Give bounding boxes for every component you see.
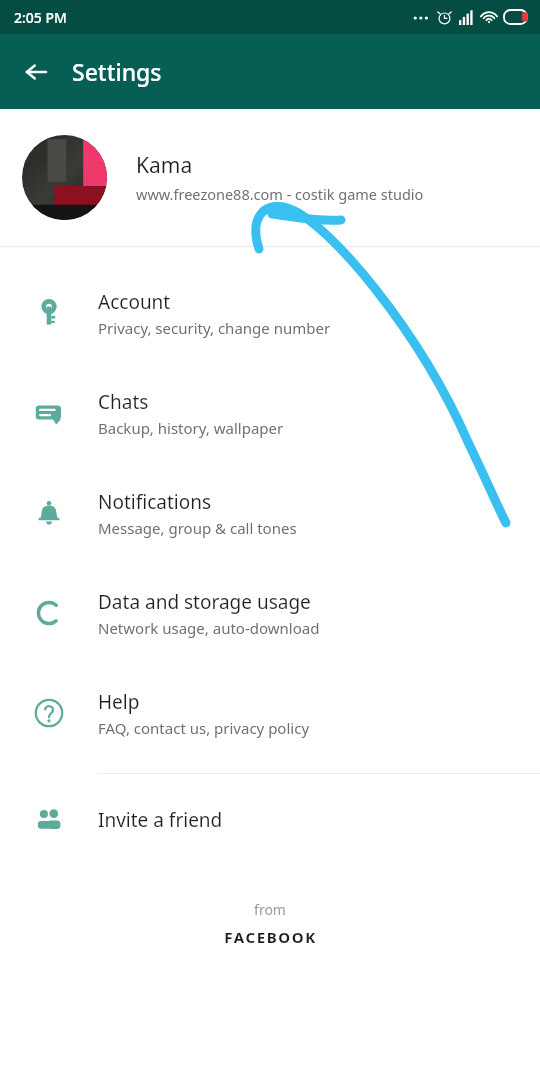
button[interactable]: Account <box>0 263 540 363</box>
staticText: from <box>254 900 286 919</box>
staticText: Invite a friend <box>98 807 223 833</box>
staticText: Network usage, auto-download <box>98 618 320 638</box>
staticText: Message, group & call tones <box>98 518 297 538</box>
staticText: www.freezone88.com - costik game studio <box>136 184 424 204</box>
button[interactable]: Kama <box>0 109 540 246</box>
button[interactable]: Invite a friend <box>0 774 540 866</box>
staticText: Account <box>98 289 171 315</box>
staticText: Chats <box>98 389 149 415</box>
staticText: Kama <box>136 151 193 180</box>
staticText: Data and storage usage <box>98 589 311 615</box>
staticText: 2:05 PM <box>14 8 67 27</box>
staticText: Notifications <box>98 489 212 515</box>
staticText: FACEBOOK <box>224 927 317 947</box>
staticText: Help <box>98 689 140 715</box>
button[interactable]: Chats <box>0 363 540 463</box>
staticText: Backup, history, wallpaper <box>98 418 284 438</box>
button[interactable]: Notifications <box>0 463 540 563</box>
button[interactable]: Back <box>12 48 60 96</box>
staticText: FAQ, contact us, privacy policy <box>98 718 310 738</box>
button[interactable]: Data and storage usage <box>0 563 540 663</box>
staticText: Privacy, security, change number <box>98 318 331 338</box>
staticText: Settings <box>72 56 162 87</box>
button[interactable]: Help <box>0 663 540 763</box>
